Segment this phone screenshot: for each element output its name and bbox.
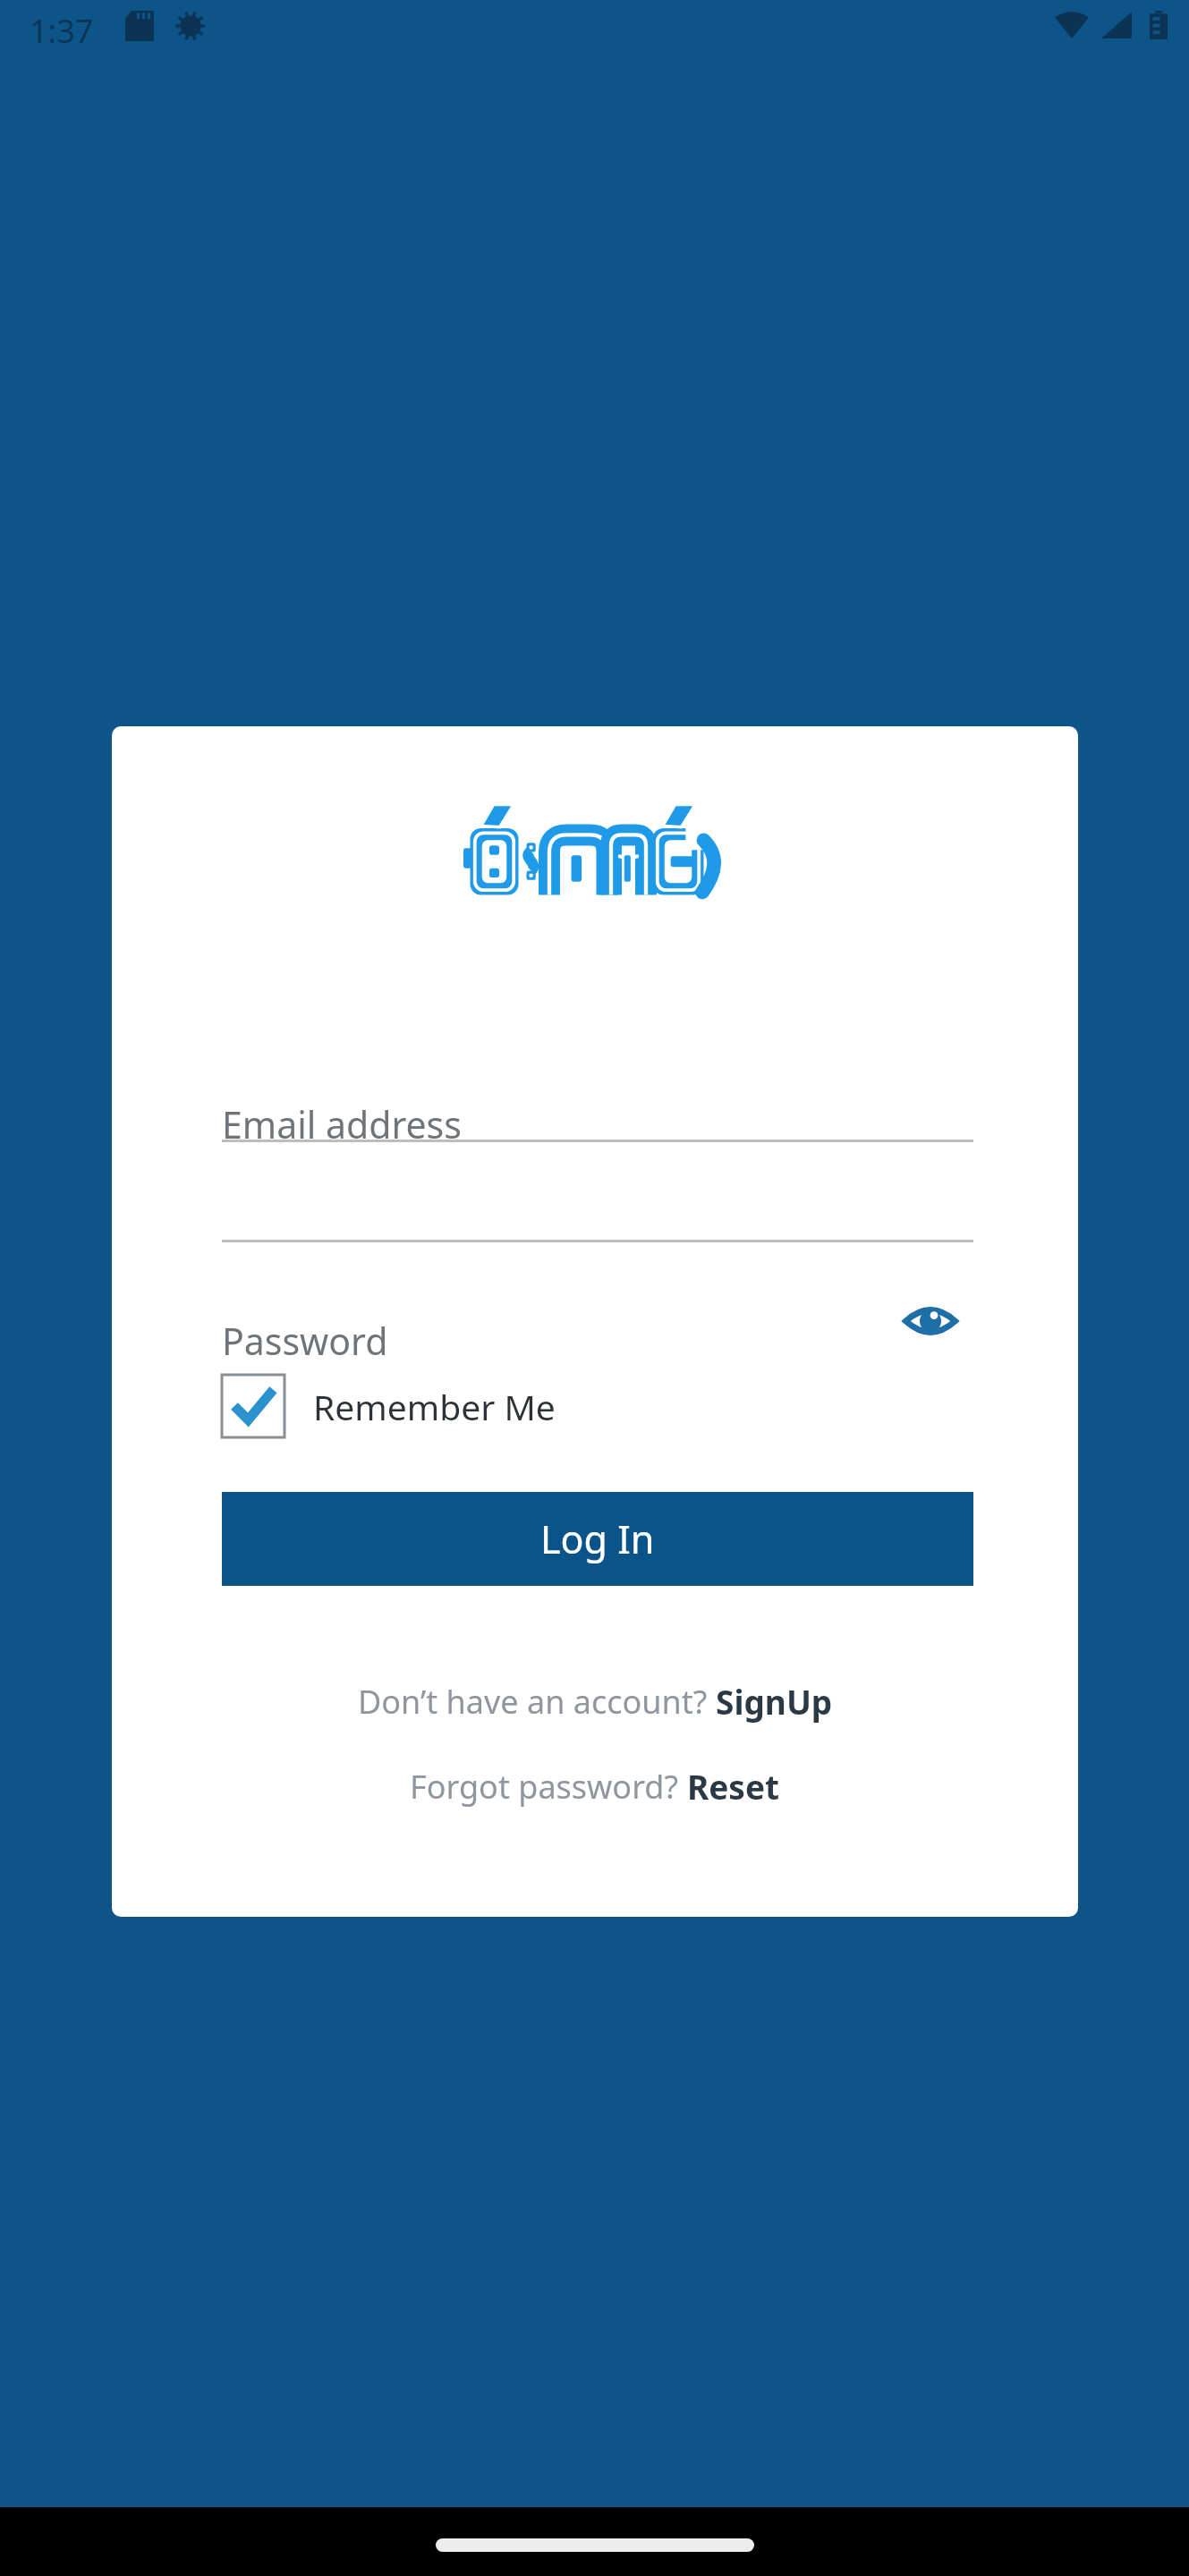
staticText: Don’t have an account? [358,1680,716,1724]
staticText: Reset [687,1764,780,1809]
staticText: Password [222,1316,388,1366]
staticText: Forgot password? [410,1765,687,1809]
button[interactable]: Password [222,1283,911,1399]
button[interactable]: Log In [222,1492,973,1586]
button[interactable]: Remember Me [222,1373,556,1439]
staticText: 1:37 [30,9,94,53]
button[interactable]: Show password [886,1276,975,1366]
button[interactable]: Email address [222,1066,973,1182]
staticText: SignUp [716,1679,833,1724]
staticText: Email address [222,1099,462,1149]
button[interactable]: Don’t have an account? [112,1670,1078,1733]
staticText: Log In [540,1513,655,1565]
staticText: Remember Me [313,1383,556,1430]
button[interactable]: Forgot password? [112,1755,1078,1818]
